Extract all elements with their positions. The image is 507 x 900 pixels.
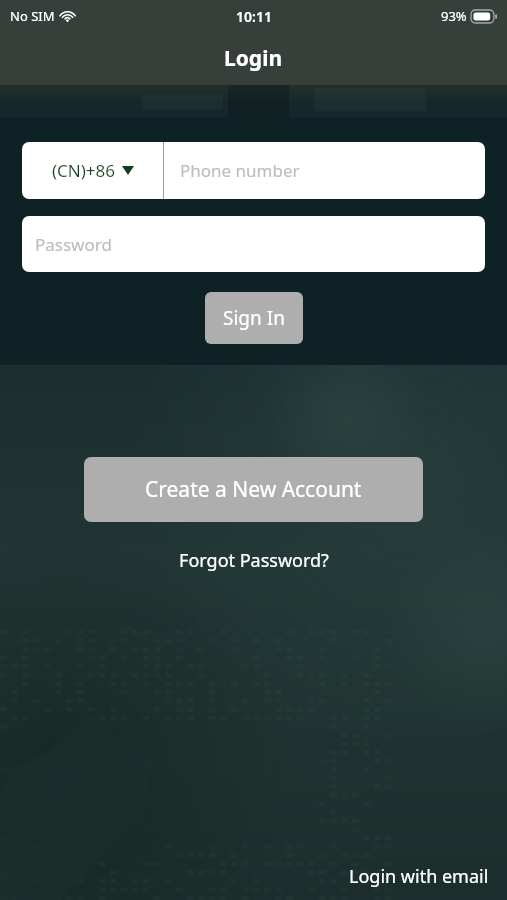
staticText: 93% bbox=[441, 7, 467, 25]
staticText: Password bbox=[35, 233, 112, 256]
staticText: No SIM bbox=[10, 7, 55, 25]
button[interactable]: Phone number bbox=[164, 142, 485, 199]
button[interactable]: Forgot Password? bbox=[171, 544, 337, 577]
staticText: Phone number bbox=[180, 159, 300, 182]
staticText: Forgot Password? bbox=[179, 548, 329, 573]
staticText: Login bbox=[224, 44, 283, 73]
button[interactable]: Login with email bbox=[341, 859, 497, 894]
button[interactable]: (CN)+86 bbox=[22, 142, 163, 199]
staticText: 10:11 bbox=[236, 7, 272, 26]
staticText: Create a New Account bbox=[145, 475, 362, 504]
button[interactable]: Password bbox=[22, 216, 485, 272]
button[interactable]: Create a New Account bbox=[84, 457, 423, 522]
staticText: Login with email bbox=[349, 864, 489, 889]
staticText: (CN)+86 bbox=[52, 159, 116, 182]
staticText: Sign In bbox=[223, 305, 285, 331]
button[interactable]: Sign In bbox=[205, 292, 303, 344]
